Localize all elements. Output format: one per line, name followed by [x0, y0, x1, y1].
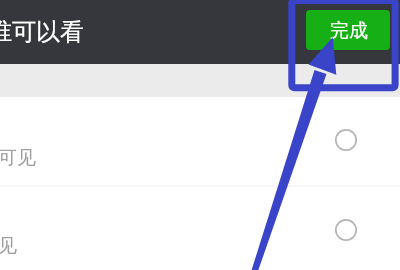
staticText: 完成: [330, 19, 368, 43]
button[interactable]: 完成: [306, 10, 390, 50]
button[interactable]: 见: [0, 186, 400, 270]
staticText: 谁可以看: [0, 17, 84, 47]
staticText: 见: [0, 234, 17, 258]
staticText: 可见: [0, 146, 36, 170]
button[interactable]: 可见: [0, 97, 400, 185]
other: Select option: [335, 129, 357, 151]
other: Select option: [335, 219, 357, 241]
